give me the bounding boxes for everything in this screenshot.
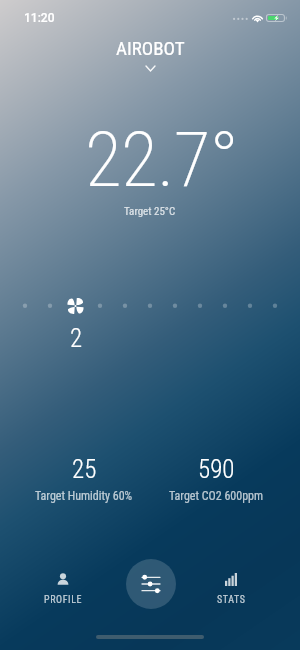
staticText: Target CO2 600ppm: [169, 489, 264, 503]
button[interactable]: STATS: [189, 556, 273, 606]
staticText: 2: [70, 324, 83, 353]
staticText: 590: [198, 455, 235, 484]
button[interactable]: Controls: [126, 559, 176, 609]
other: Fan speed: [67, 298, 84, 314]
staticText: Target 25°C: [124, 205, 176, 218]
staticText: AIROBOT: [116, 37, 185, 59]
staticText: STATS: [217, 594, 246, 606]
button[interactable]: 590: [150, 455, 282, 503]
staticText: PROFILE: [44, 594, 83, 606]
staticText: 25: [72, 455, 97, 484]
button[interactable]: AIROBOT: [0, 37, 300, 71]
button[interactable]: 25: [18, 455, 150, 503]
button[interactable]: PROFILE: [21, 556, 105, 606]
staticText: 11:20: [24, 11, 55, 25]
staticText: Target Humidity 60%: [35, 489, 133, 503]
button[interactable]: Fan speed: [0, 292, 300, 354]
staticText: 22.7°: [85, 115, 238, 204]
